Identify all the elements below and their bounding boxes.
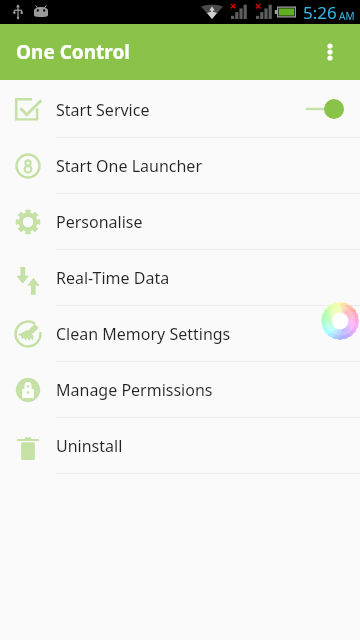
staticText: Personalise	[56, 211, 143, 233]
staticText: Uninstall	[56, 435, 123, 457]
button[interactable]: More options	[304, 26, 356, 78]
staticText: Manage Permissions	[56, 379, 213, 401]
staticText: AM	[339, 9, 355, 23]
staticText: Start One Launcher	[56, 155, 202, 177]
button[interactable]: Manage Permissions	[0, 362, 360, 418]
button[interactable]: Uninstall	[0, 418, 360, 474]
button[interactable]: Personalise	[0, 194, 360, 250]
button[interactable]: Start One Launcher	[0, 138, 360, 194]
button[interactable]: Clean Memory Settings	[0, 306, 360, 362]
button[interactable]: Start Service	[0, 82, 360, 138]
button[interactable]: Real-Time Data	[0, 250, 360, 306]
staticText: Clean Memory Settings	[56, 323, 231, 345]
staticText: Start Service	[56, 99, 150, 121]
staticText: 5:26	[303, 1, 337, 24]
staticText: One Control	[16, 39, 130, 65]
button[interactable]: Start Service switch, on	[290, 87, 350, 131]
staticText: Real-Time Data	[56, 267, 170, 289]
